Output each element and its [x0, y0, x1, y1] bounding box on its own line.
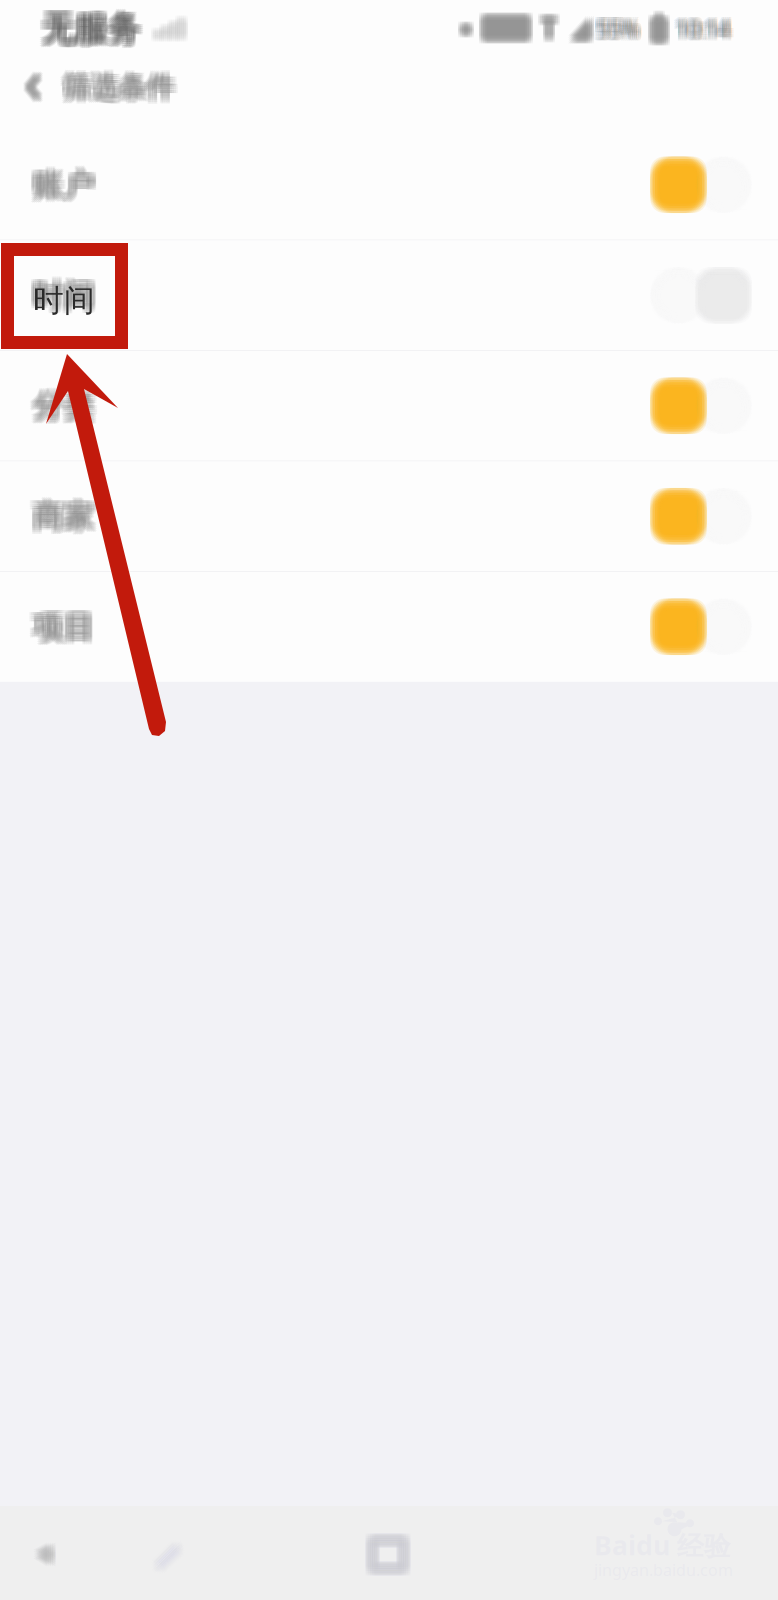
staticText: 时间 — [33, 282, 95, 320]
button[interactable]: Back — [0, 1531, 90, 1577]
button[interactable]: 筛选条件 — [0, 57, 201, 117]
button[interactable]: 项目 — [0, 572, 778, 681]
button[interactable]: 分类 — [0, 351, 778, 460]
button[interactable]: 账户 — [0, 130, 778, 239]
button[interactable]: Recents — [220, 1531, 480, 1577]
button[interactable]: 时间 — [0, 240, 778, 350]
button[interactable]: 商家 — [0, 461, 778, 571]
